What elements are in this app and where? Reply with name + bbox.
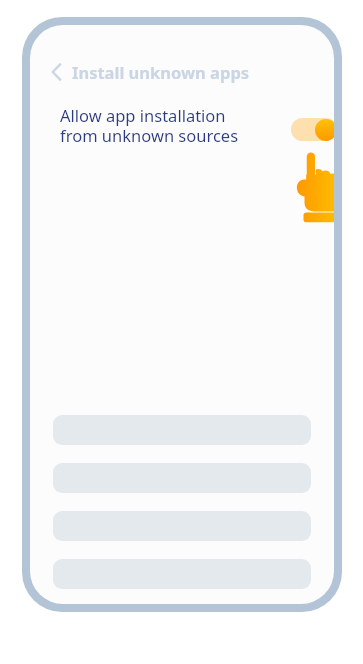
button[interactable]: Allow app installation toggle (291, 118, 334, 141)
staticText: Install unknown apps (72, 61, 250, 83)
other: Back (50, 62, 64, 82)
button[interactable]: Back (50, 57, 290, 87)
staticText: Allow app installation from unknown sour… (60, 104, 295, 147)
